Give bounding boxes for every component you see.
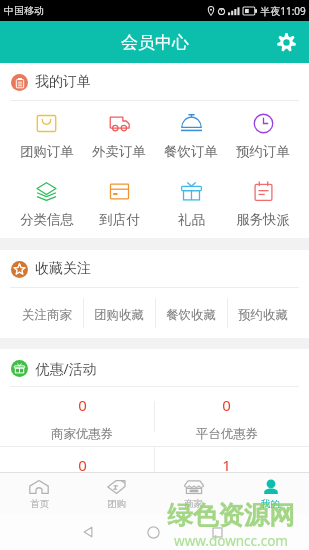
button[interactable]: 0	[10, 387, 154, 446]
staticText: 会员中心	[121, 32, 189, 53]
staticText: 半夜11:09	[260, 4, 306, 18]
button[interactable]: Back	[82, 526, 94, 538]
staticText: 关注商家	[22, 307, 72, 323]
staticText: 绿色资源网	[167, 499, 295, 531]
button[interactable]: 餐饮订单	[155, 101, 227, 169]
staticText: www.downcc.com	[174, 532, 288, 550]
button[interactable]: 0	[154, 387, 299, 446]
button[interactable]: 商家	[155, 473, 232, 514]
button[interactable]: 团购收藏	[83, 288, 155, 338]
button[interactable]: 外卖订单	[83, 101, 155, 169]
staticText: 服务快派	[236, 211, 290, 228]
button[interactable]: Home	[147, 526, 160, 539]
staticText: 优惠/活动	[35, 359, 97, 378]
staticText: 团购	[107, 498, 126, 510]
button[interactable]: 餐饮收藏	[155, 288, 227, 338]
staticText: 餐饮收藏	[166, 307, 216, 323]
staticText: 0	[222, 395, 231, 415]
staticText: 平台优惠券	[196, 426, 258, 442]
staticText: 预约收藏	[238, 307, 288, 323]
button[interactable]: 团购订单	[10, 101, 83, 169]
button[interactable]: Recents	[212, 527, 223, 538]
staticText: 收藏关注	[35, 260, 91, 278]
staticText: 我的订单	[35, 73, 91, 91]
button[interactable]: 首页	[0, 473, 78, 514]
staticText: 0	[78, 395, 87, 415]
staticText: 中国移动	[4, 4, 44, 17]
button[interactable]: 1	[154, 447, 299, 472]
staticText: 商家优惠券	[51, 426, 113, 442]
button[interactable]: 礼品	[155, 169, 227, 238]
staticText: 礼品	[178, 211, 205, 228]
staticText: 商家	[184, 498, 203, 510]
button[interactable]: 预约订单	[227, 101, 299, 169]
staticText: 首页	[30, 498, 49, 510]
button[interactable]: 预约收藏	[227, 288, 299, 338]
button[interactable]: 我的	[232, 473, 309, 514]
staticText: 分类信息	[20, 211, 74, 228]
staticText: 0	[78, 455, 87, 472]
button[interactable]: Settings	[270, 26, 302, 58]
staticText: 到店付	[99, 211, 140, 228]
staticText: 1	[222, 455, 231, 472]
staticText: 餐饮订单	[164, 143, 218, 160]
button[interactable]: 到店付	[83, 169, 155, 238]
button[interactable]: 关注商家	[10, 288, 83, 338]
staticText: 团购订单	[20, 143, 74, 160]
button[interactable]: 分类信息	[10, 169, 83, 238]
button[interactable]: 服务快派	[227, 169, 299, 238]
staticText: 我的	[261, 498, 280, 510]
staticText: 预约订单	[236, 143, 290, 160]
staticText: 外卖订单	[92, 143, 146, 160]
button[interactable]: 0	[10, 447, 154, 472]
button[interactable]: 团购	[78, 473, 155, 514]
staticText: 团购收藏	[94, 307, 144, 323]
